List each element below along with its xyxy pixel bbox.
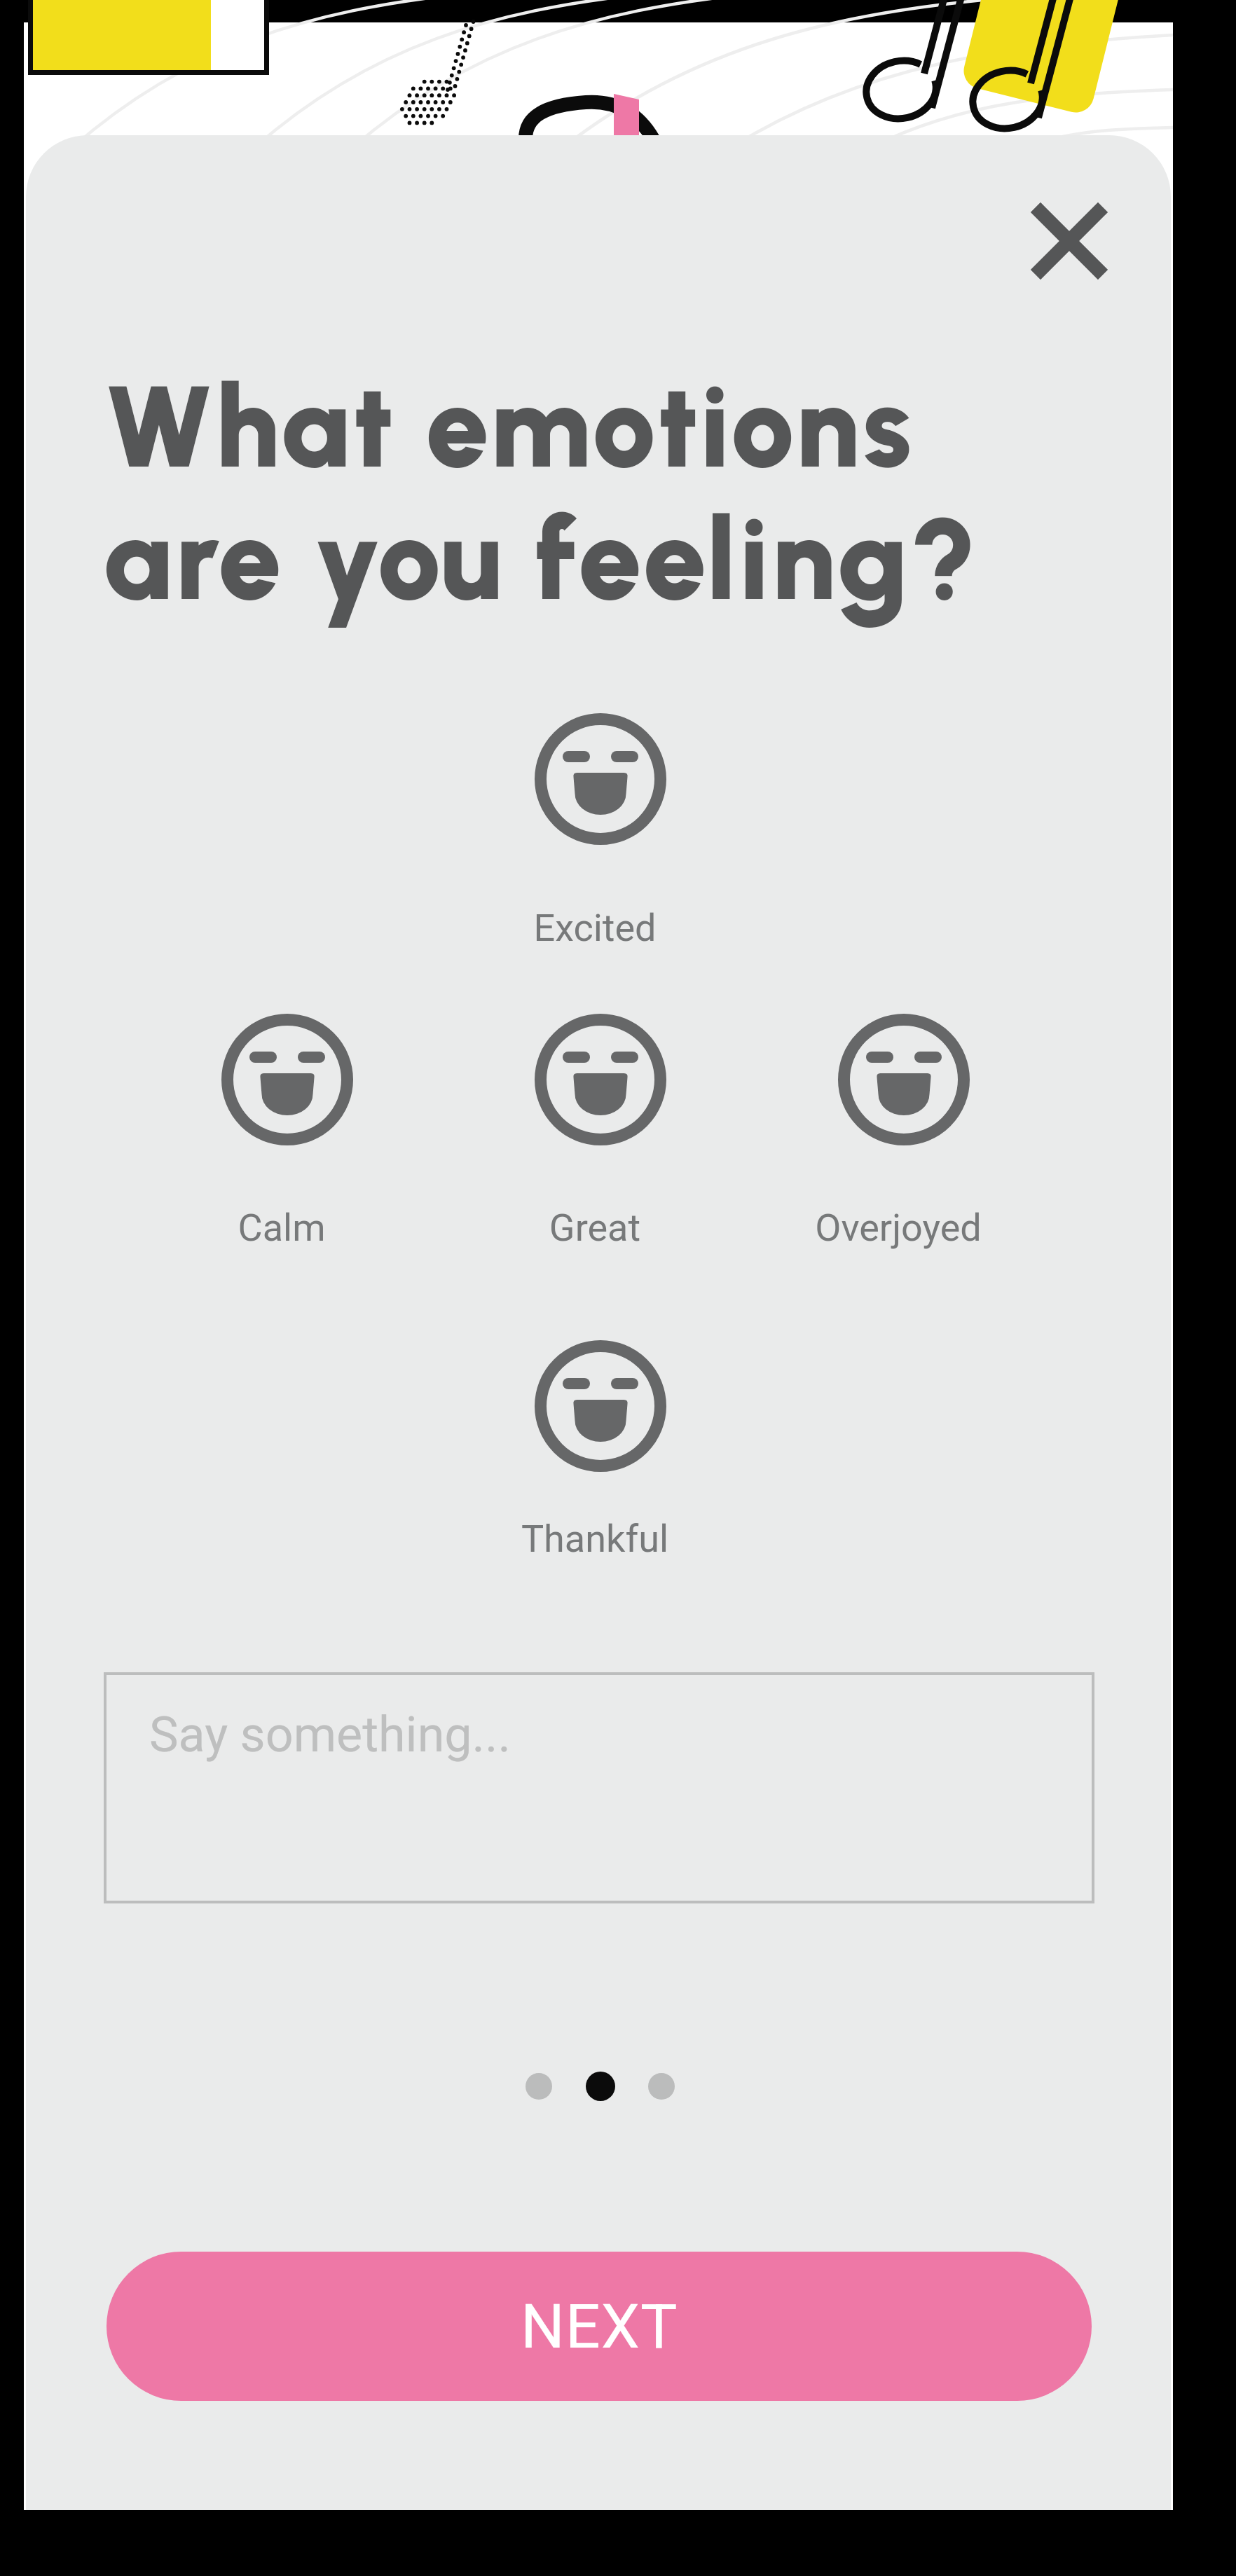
button[interactable]: Calm — [175, 998, 399, 1262]
button[interactable]: Close — [1026, 198, 1113, 284]
staticText: Great — [483, 1206, 707, 1269]
button[interactable]: Thankful — [488, 1325, 713, 1573]
staticText: Overjoyed — [786, 1206, 1010, 1269]
staticText: What emotions are you feeling? — [103, 358, 980, 628]
staticText: Calm — [170, 1206, 394, 1269]
button[interactable]: NEXT — [107, 2252, 1092, 2401]
staticText: NEXT — [521, 2290, 678, 2362]
button[interactable]: Say something... — [105, 1674, 1093, 1902]
button[interactable]: Excited — [488, 698, 713, 962]
staticText: Say something... — [149, 1706, 511, 1763]
button[interactable]: Great — [488, 998, 713, 1262]
staticText: Excited — [483, 906, 707, 969]
staticText: Thankful — [483, 1517, 707, 1580]
button[interactable]: Overjoyed — [792, 998, 1016, 1262]
